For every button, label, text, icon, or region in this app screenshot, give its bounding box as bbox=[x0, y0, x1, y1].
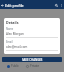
staticText: Private bbox=[30, 64, 40, 68]
staticText: SAVE CHANGES bbox=[22, 58, 43, 62]
staticText: Edit profile bbox=[5, 3, 24, 8]
staticText: Email bbox=[6, 40, 13, 44]
button[interactable]: Private bbox=[26, 64, 40, 68]
staticText: alex@mail.com bbox=[6, 45, 28, 49]
staticText: Alex Morgan bbox=[6, 32, 24, 36]
staticText: Name bbox=[6, 27, 14, 31]
button[interactable]: More options bbox=[59, 2, 64, 8]
button[interactable]: Back bbox=[0, 2, 5, 8]
button[interactable]: SAVE CHANGES bbox=[2, 57, 62, 62]
button[interactable]: Public bbox=[7, 64, 19, 68]
staticText: Details bbox=[6, 20, 19, 25]
button[interactable]: Search bbox=[54, 2, 59, 8]
staticText: Public bbox=[11, 64, 19, 68]
